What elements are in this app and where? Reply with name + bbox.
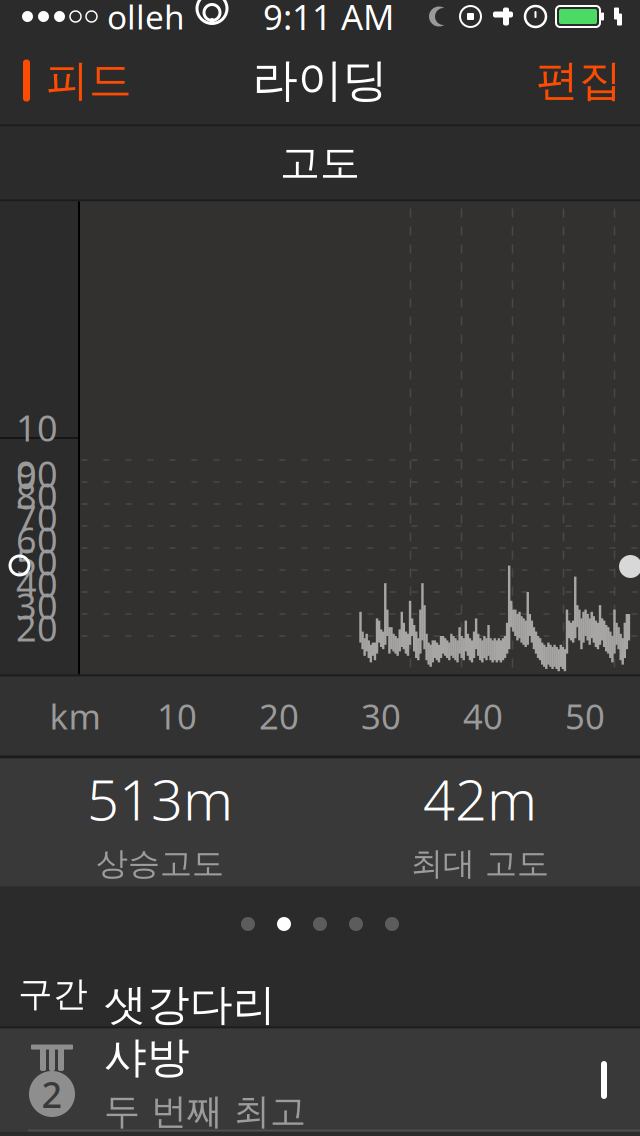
staticText: 40	[16, 560, 58, 607]
staticText: 최대 고도	[411, 844, 549, 883]
staticText: 두 번째 최고 기록-2:19	[104, 1089, 306, 1136]
staticText: 9:11 AM	[263, 0, 394, 39]
staticText: 2	[41, 1070, 62, 1118]
staticText: 라이딩	[252, 53, 387, 108]
staticText: 70	[16, 494, 58, 541]
button[interactable]: 편집	[518, 36, 640, 124]
staticText: 513m	[87, 762, 233, 836]
staticText: 60	[16, 516, 58, 563]
staticText: 50	[565, 693, 605, 739]
staticText: 20	[16, 604, 58, 651]
staticText: 고도	[280, 138, 360, 187]
staticText: km	[49, 693, 100, 739]
staticText: 30	[361, 693, 401, 739]
staticText: olleh	[107, 0, 185, 39]
staticText: 30	[16, 582, 58, 629]
staticText: 40	[463, 693, 503, 739]
staticText: 100	[16, 404, 58, 499]
staticText: 피드	[46, 54, 132, 107]
staticText: 50	[16, 538, 58, 585]
staticText: 10	[157, 693, 197, 739]
staticText: 90	[16, 450, 58, 497]
staticText: 구간	[18, 973, 88, 1015]
staticText: 편집	[536, 54, 622, 107]
staticText: 20	[259, 693, 299, 739]
staticText: 80	[16, 472, 58, 519]
button[interactable]: 피드	[0, 36, 146, 124]
staticText: 샛강다리 샤방	[104, 979, 276, 1083]
staticText: 상승고도	[96, 844, 224, 883]
button[interactable]: 2	[0, 1028, 640, 1131]
staticText: 42m	[423, 762, 537, 836]
